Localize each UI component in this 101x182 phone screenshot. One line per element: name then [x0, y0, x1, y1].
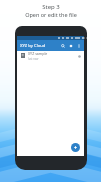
- staticText: XYZ by Cloud: [20, 43, 46, 49]
- staticText: XYZ sample: [28, 51, 48, 56]
- button[interactable]: More options: [76, 43, 82, 49]
- button[interactable]: Search: [60, 43, 66, 49]
- button[interactable]: XYZ by Cloud: [17, 40, 84, 51]
- button[interactable]: Row options: [76, 53, 82, 59]
- button[interactable]: XYZ sample: [17, 51, 84, 60]
- staticText: Step 3: [42, 3, 60, 11]
- staticText: Open or edit the file: [25, 11, 77, 18]
- button[interactable]: Account: [68, 43, 74, 49]
- button[interactable]: Create new: [71, 143, 80, 152]
- staticText: Just now: [28, 57, 39, 60]
